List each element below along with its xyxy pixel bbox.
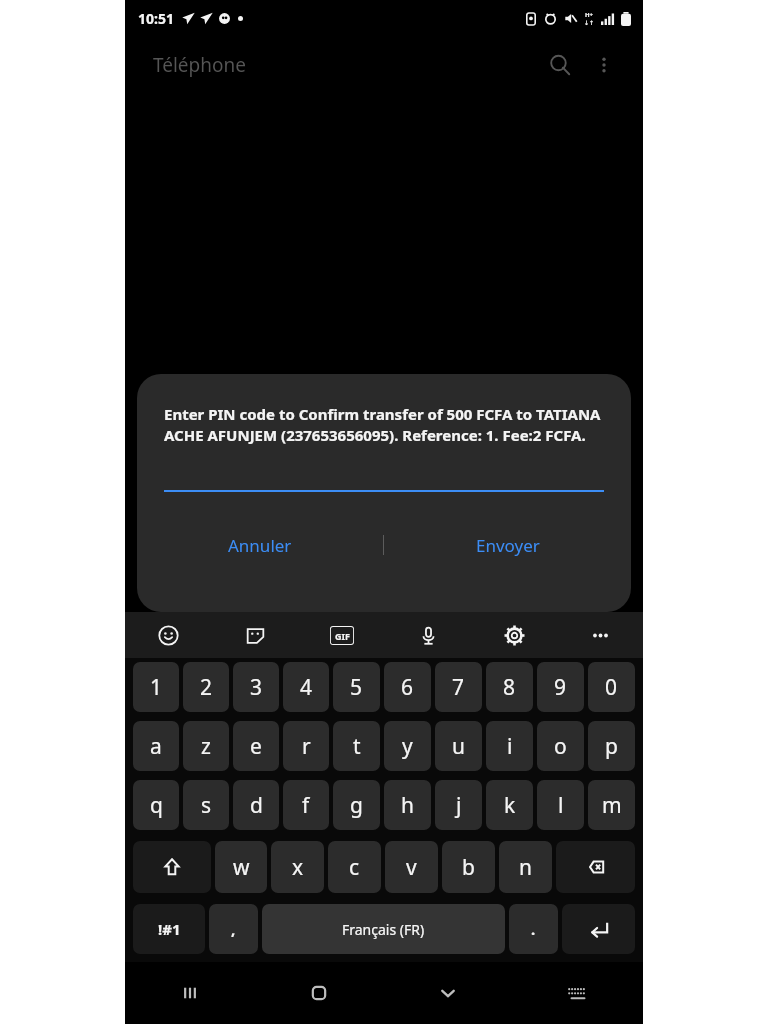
staticText: v	[406, 853, 417, 882]
staticText: l	[558, 791, 564, 820]
button[interactable]: j	[435, 780, 482, 830]
staticText: b	[462, 853, 475, 882]
staticText: 4	[300, 673, 313, 702]
button[interactable]: m	[588, 780, 635, 830]
staticText: 3	[250, 673, 263, 702]
button[interactable]: v	[385, 841, 438, 893]
button[interactable]: y	[384, 721, 431, 771]
staticText: 1	[150, 673, 163, 702]
button[interactable]: Français (FR)	[262, 904, 505, 954]
button[interactable]: !#1	[133, 904, 205, 954]
button[interactable]: e	[233, 721, 279, 771]
staticText: h	[401, 791, 414, 820]
button[interactable]: Backspace	[556, 841, 635, 893]
button[interactable]: l	[537, 780, 584, 830]
staticText: 10:51	[138, 9, 174, 28]
button[interactable]: Enter	[562, 904, 635, 954]
staticText: Enter PIN code to Confirm transfer of 50…	[164, 404, 604, 446]
button[interactable]: 8	[486, 662, 533, 712]
button[interactable]: d	[233, 780, 279, 830]
button[interactable]: g	[333, 780, 380, 830]
staticText: s	[201, 791, 212, 820]
button[interactable]: i	[486, 721, 533, 771]
button[interactable]: n	[499, 841, 552, 893]
staticText: 6	[401, 673, 414, 702]
staticText: t	[353, 732, 361, 761]
button[interactable]: Change keyboard	[513, 962, 643, 1024]
button[interactable]: GIF	[299, 612, 385, 658]
staticText: z	[201, 732, 211, 761]
button[interactable]: o	[537, 721, 584, 771]
staticText: p	[605, 732, 618, 761]
button[interactable]: More	[557, 612, 643, 658]
staticText: 0	[605, 673, 618, 702]
button[interactable]: s	[183, 780, 229, 830]
staticText: 5	[350, 673, 363, 702]
button[interactable]: r	[283, 721, 329, 771]
button[interactable]: More options	[583, 44, 625, 86]
button[interactable]: Voice input	[385, 612, 471, 658]
staticText: ,	[231, 919, 236, 939]
button[interactable]: t	[333, 721, 380, 771]
button[interactable]: w	[215, 841, 267, 893]
staticText: ↓↑	[584, 19, 595, 26]
button[interactable]: c	[328, 841, 381, 893]
staticText: w	[233, 853, 250, 882]
button[interactable]: Annuler	[137, 522, 383, 568]
button[interactable]: 6	[384, 662, 431, 712]
staticText: 9	[554, 673, 567, 702]
button[interactable]: Envoyer	[384, 522, 631, 568]
button[interactable]: 9	[537, 662, 584, 712]
button[interactable]: ,	[209, 904, 258, 954]
button[interactable]: q	[133, 780, 179, 830]
button[interactable]: Stickers	[212, 612, 299, 658]
button[interactable]: p	[588, 721, 635, 771]
button[interactable]: 0	[588, 662, 635, 712]
staticText: 7	[452, 673, 465, 702]
staticText: x	[292, 853, 304, 882]
button[interactable]: Search	[537, 42, 583, 88]
button[interactable]: Home	[254, 962, 383, 1024]
button[interactable]: a	[133, 721, 179, 771]
button[interactable]: Keyboard settings	[471, 612, 557, 658]
staticText: 8	[503, 673, 516, 702]
staticText: r	[302, 732, 311, 761]
button[interactable]: z	[183, 721, 229, 771]
button[interactable]: 2	[183, 662, 229, 712]
staticText: m	[602, 791, 622, 820]
staticText: u	[452, 732, 465, 761]
button[interactable]: 5	[333, 662, 380, 712]
staticText: q	[150, 791, 163, 820]
staticText: f	[302, 791, 310, 820]
button[interactable]: f	[283, 780, 329, 830]
staticText: e	[250, 732, 262, 761]
button[interactable]: k	[486, 780, 533, 830]
button[interactable]: 4	[283, 662, 329, 712]
staticText: n	[519, 853, 532, 882]
button[interactable]: 7	[435, 662, 482, 712]
button[interactable]: Recents	[125, 962, 254, 1024]
button[interactable]: Hide keyboard	[383, 962, 513, 1024]
staticText: y	[402, 732, 413, 761]
staticText: GIF	[335, 630, 350, 642]
staticText: j	[456, 791, 462, 820]
staticText: g	[350, 791, 363, 820]
staticText: Téléphone	[153, 52, 246, 78]
button[interactable]: x	[271, 841, 324, 893]
button[interactable]: 1	[133, 662, 179, 712]
button[interactable]: 3	[233, 662, 279, 712]
staticText: d	[250, 791, 263, 820]
button[interactable]: .	[509, 904, 558, 954]
button[interactable]: h	[384, 780, 431, 830]
button[interactable]: u	[435, 721, 482, 771]
staticText: .	[531, 919, 536, 939]
staticText: Français (FR)	[342, 920, 425, 939]
staticText: i	[507, 732, 513, 761]
button[interactable]: Shift	[133, 841, 211, 893]
staticText: k	[504, 791, 516, 820]
button[interactable]: b	[442, 841, 495, 893]
button[interactable]: Emoji	[125, 612, 212, 658]
staticText: !#1	[158, 919, 181, 939]
